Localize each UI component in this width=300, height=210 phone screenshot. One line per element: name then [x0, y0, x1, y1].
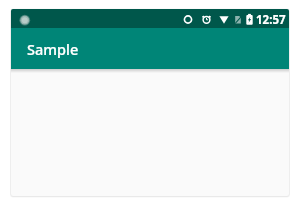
button[interactable]: Sample: [11, 28, 289, 69]
staticText: 12:57: [256, 12, 286, 28]
staticText: Sample: [27, 39, 79, 59]
